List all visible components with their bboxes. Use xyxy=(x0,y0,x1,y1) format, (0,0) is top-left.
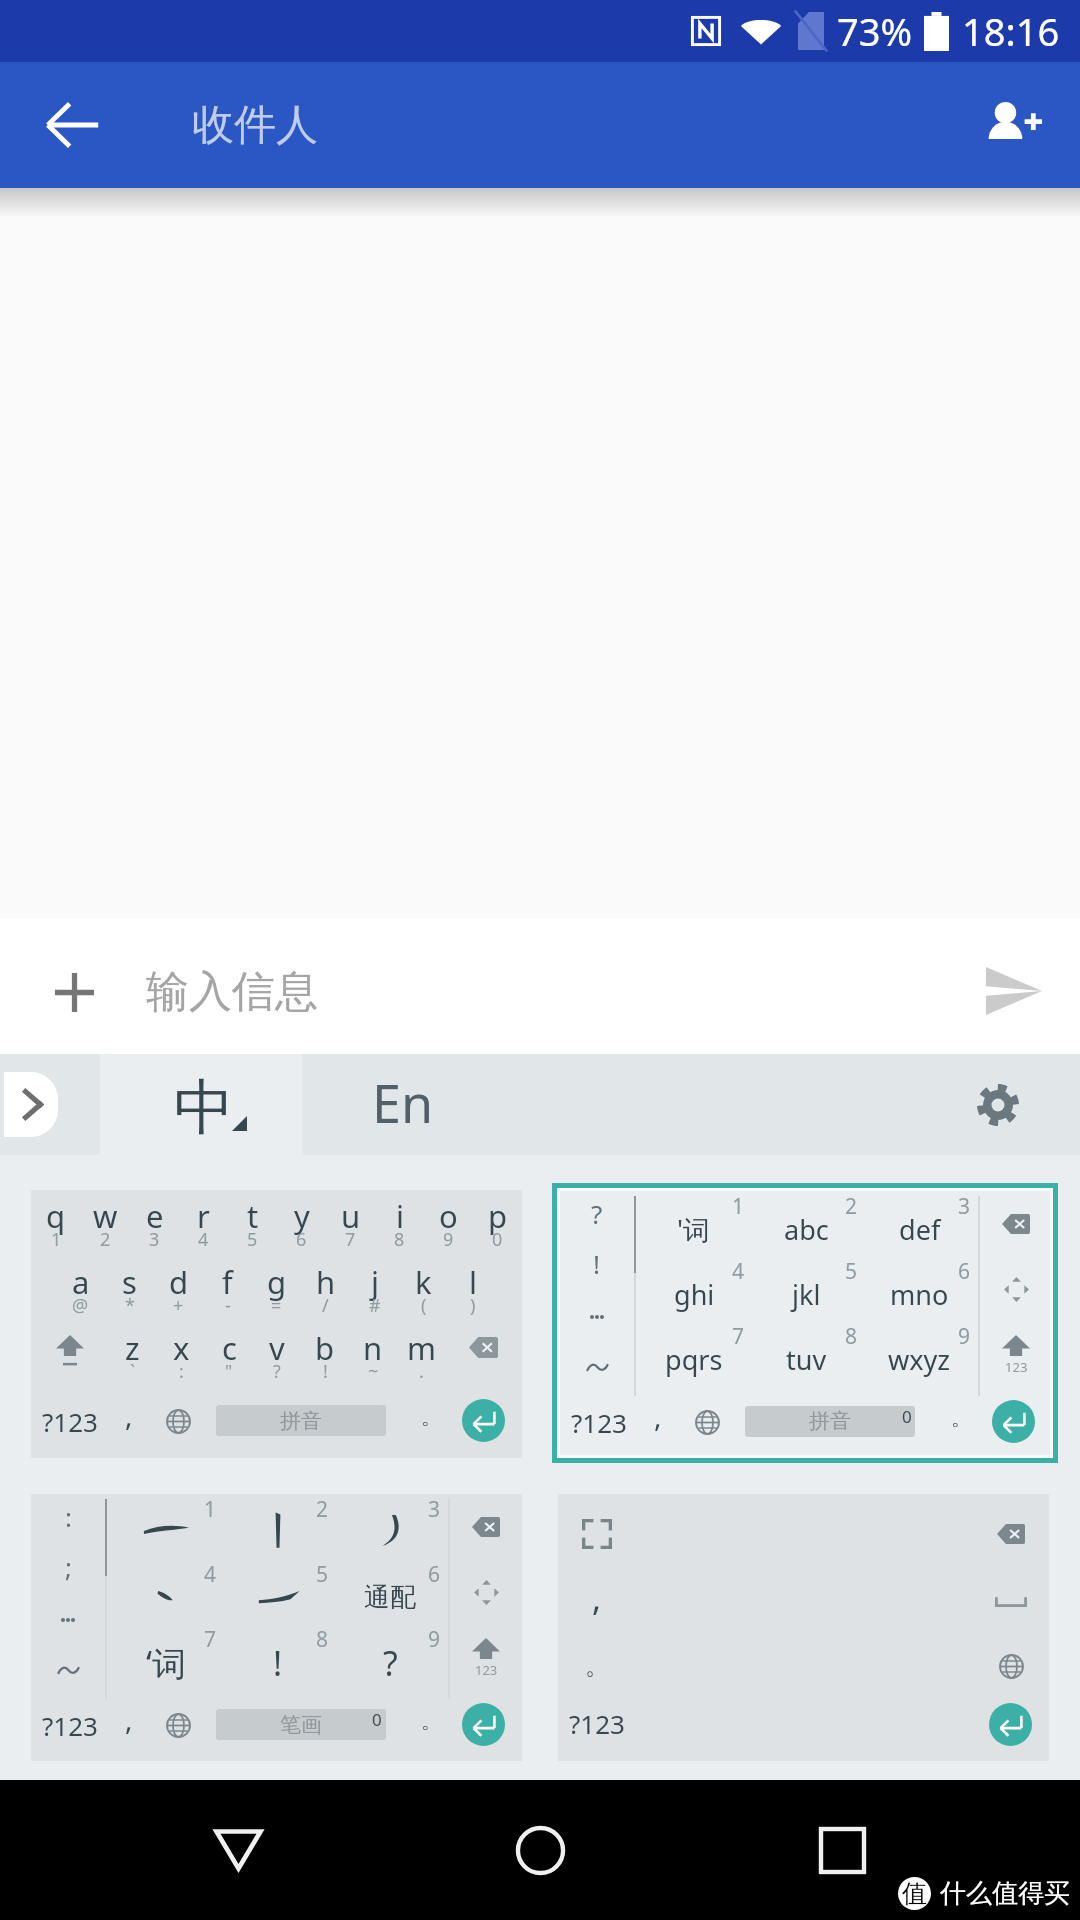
button[interactable]: Settings xyxy=(958,1065,1038,1145)
button[interactable]: j xyxy=(350,1261,399,1319)
button[interactable]: Backspace xyxy=(980,1191,1052,1257)
button[interactable]: ‘词 xyxy=(109,1624,222,1689)
button[interactable]: Back xyxy=(190,1802,286,1898)
button[interactable]: ?123 xyxy=(37,1386,103,1456)
button[interactable] xyxy=(31,1645,105,1696)
staticText: , xyxy=(654,1397,662,1435)
button[interactable]: 4 xyxy=(109,1559,222,1624)
button[interactable] xyxy=(31,1594,105,1645)
button[interactable]: def xyxy=(863,1191,976,1256)
button[interactable]: 5 xyxy=(222,1559,334,1624)
button[interactable]: ; xyxy=(31,1544,105,1594)
button[interactable]: t xyxy=(228,1195,277,1253)
button[interactable]: Switch input language xyxy=(156,1386,200,1456)
button[interactable]: ! xyxy=(222,1624,334,1689)
button[interactable]: Move cursor xyxy=(980,1257,1052,1322)
button[interactable]: w xyxy=(81,1195,130,1253)
button[interactable] xyxy=(560,1291,634,1342)
button[interactable]: Fullscreen xyxy=(568,1506,626,1562)
button[interactable]: '词 xyxy=(638,1191,750,1256)
button[interactable]: ?123 xyxy=(37,1690,103,1760)
button[interactable]: u xyxy=(326,1195,375,1253)
button[interactable] xyxy=(560,1342,634,1393)
button[interactable]: Move cursor xyxy=(450,1560,522,1625)
button[interactable]: h xyxy=(301,1261,350,1319)
button[interactable]: r xyxy=(179,1195,228,1253)
button[interactable]: En xyxy=(302,1054,504,1155)
button[interactable]: Add contact xyxy=(968,80,1058,170)
button[interactable]: 通配 xyxy=(334,1559,446,1624)
button[interactable]: abc xyxy=(750,1191,863,1256)
button[interactable]: b xyxy=(301,1327,349,1385)
button[interactable]: Enter xyxy=(462,1703,505,1746)
button[interactable]: 。 xyxy=(568,1643,626,1699)
button[interactable]: g xyxy=(252,1261,301,1319)
button[interactable]: Enter xyxy=(989,1703,1032,1746)
button[interactable]: Shift xyxy=(980,1322,1052,1387)
button[interactable]: Shift xyxy=(31,1327,108,1377)
button[interactable]: 。 xyxy=(939,1387,983,1457)
button[interactable]: 中 xyxy=(100,1054,302,1155)
button[interactable]: ? xyxy=(560,1191,634,1241)
button[interactable]: v xyxy=(253,1327,301,1385)
button[interactable]: i xyxy=(375,1195,424,1253)
button[interactable]: Switch input language xyxy=(685,1387,729,1457)
button[interactable]: Backspace xyxy=(982,1506,1040,1562)
button[interactable]: 1 xyxy=(109,1494,222,1559)
button[interactable]: Space xyxy=(982,1572,1040,1628)
button[interactable]: tuv xyxy=(750,1321,863,1386)
button[interactable]: e xyxy=(130,1195,179,1253)
button[interactable]: q xyxy=(31,1195,81,1253)
staticText: d xyxy=(169,1261,189,1303)
button[interactable]: o xyxy=(424,1195,473,1253)
button[interactable]: , xyxy=(109,1386,149,1456)
button[interactable]: Backspace xyxy=(445,1327,522,1377)
button[interactable]: a xyxy=(56,1261,105,1319)
button[interactable]: m xyxy=(397,1327,445,1385)
button[interactable]: s xyxy=(105,1261,154,1319)
button[interactable]: z xyxy=(108,1327,157,1385)
button[interactable]: , xyxy=(568,1577,626,1633)
button[interactable]: Enter xyxy=(992,1400,1035,1443)
button[interactable]: Recent apps xyxy=(794,1802,890,1898)
button[interactable]: 。 xyxy=(409,1386,453,1456)
button[interactable]: jkl xyxy=(750,1256,863,1321)
button[interactable]: mno xyxy=(863,1256,976,1321)
button[interactable]: d xyxy=(154,1261,203,1319)
button[interactable]: ghi xyxy=(638,1256,750,1321)
button[interactable]: 拼音 xyxy=(216,1405,386,1436)
button[interactable]: ?123 xyxy=(566,1387,632,1457)
button[interactable]: pqrs xyxy=(638,1321,750,1386)
button[interactable]: , xyxy=(638,1387,678,1457)
button[interactable]: ?123 xyxy=(564,1699,630,1747)
button[interactable]: Home xyxy=(492,1802,588,1898)
button[interactable]: ! xyxy=(560,1241,634,1291)
button[interactable]: Send xyxy=(966,943,1062,1039)
button[interactable]: 笔画 xyxy=(216,1709,386,1740)
button[interactable]: f xyxy=(203,1261,252,1319)
button[interactable]: c xyxy=(205,1327,253,1385)
staticText: 1 xyxy=(204,1495,217,1524)
button[interactable]: : xyxy=(31,1494,105,1544)
button[interactable]: 2 xyxy=(222,1494,334,1559)
button[interactable]: Add attachment xyxy=(29,947,119,1037)
button[interactable]: Backspace xyxy=(450,1494,522,1560)
button[interactable]: l xyxy=(448,1261,497,1319)
button[interactable]: Switch input language xyxy=(156,1690,200,1760)
button[interactable]: 3 xyxy=(334,1494,446,1559)
button[interactable]: 。 xyxy=(409,1690,453,1760)
button[interactable]: 拼音 xyxy=(745,1406,915,1437)
button[interactable]: p xyxy=(473,1195,522,1253)
button[interactable]: n xyxy=(349,1327,397,1385)
button[interactable]: x xyxy=(157,1327,205,1385)
button[interactable]: Shift xyxy=(450,1625,522,1690)
button[interactable]: Enter xyxy=(462,1399,505,1442)
button[interactable]: k xyxy=(399,1261,448,1319)
button[interactable]: y xyxy=(277,1195,326,1253)
button[interactable]: Expand keyboard list xyxy=(0,1054,100,1155)
button[interactable]: Switch input language xyxy=(982,1638,1040,1694)
button[interactable]: wxyz xyxy=(863,1321,976,1386)
button[interactable]: ? xyxy=(334,1624,446,1689)
button[interactable]: Back xyxy=(28,80,118,170)
button[interactable]: , xyxy=(109,1690,149,1760)
